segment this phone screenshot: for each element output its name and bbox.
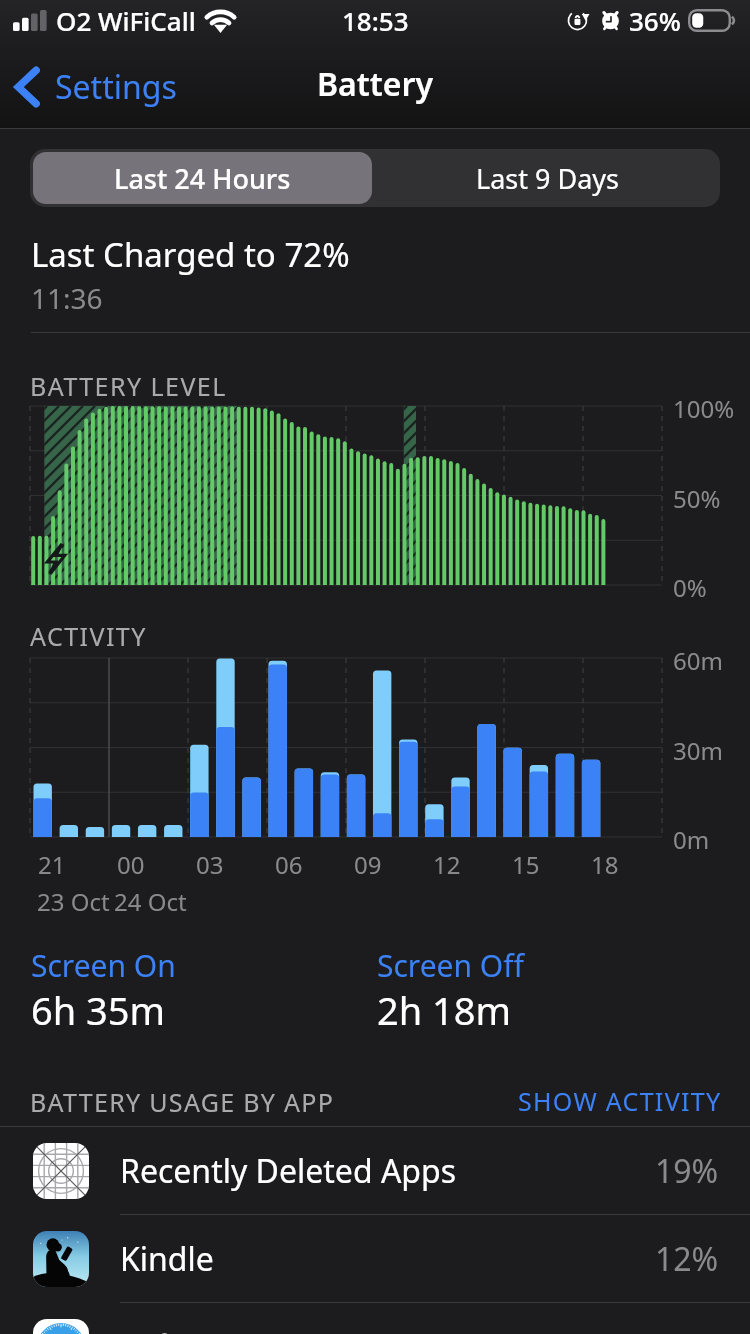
staticText: Safari [120,1325,206,1334]
staticText: 23 Oct [37,885,110,918]
staticText: 50% [673,482,721,515]
staticText: Last 24 Hours [114,160,291,197]
staticText: Screen Off [377,945,524,986]
staticText: 19% [655,1149,719,1193]
button[interactable]: Last 9 Days [375,149,720,207]
staticText: 30m [673,734,723,767]
button[interactable]: Safari [0,1303,750,1334]
button[interactable]: Last 24 Hours [33,152,372,204]
staticText: 0% [673,571,707,604]
staticText: 100% [673,392,735,425]
staticText: 36% [629,3,681,38]
staticText: 60m [673,644,723,677]
staticText: 11:36 [31,279,103,317]
staticText: 6h 35m [31,984,166,1036]
staticText: BATTERY LEVEL [30,369,227,403]
staticText: Settings [55,65,177,109]
staticText: Kindle [120,1237,214,1281]
staticText: 15 [512,848,540,881]
staticText: 12% [655,1237,719,1281]
staticText: 24 Oct [114,885,187,918]
staticText: ACTIVITY [30,619,147,653]
staticText: Recently Deleted Apps [120,1149,457,1193]
staticText: 0m [673,823,710,856]
staticText: Battery [317,62,433,106]
button[interactable]: Kindle [0,1215,750,1302]
staticText: 2h 18m [377,984,512,1036]
staticText: 12 [433,848,461,881]
staticText: 03 [196,848,224,881]
staticText: Last Charged to 72% [31,232,350,277]
staticText: Screen On [31,945,176,986]
staticText: O2 WiFiCall [56,3,196,38]
staticText: Last 9 Days [476,160,620,197]
staticText: 18 [591,848,619,881]
staticText: BATTERY USAGE BY APP [30,1085,335,1119]
staticText: SHOW ACTIVITY [518,1084,722,1118]
staticText: 06 [275,848,303,881]
staticText: 09 [354,848,382,881]
button[interactable]: SHOW ACTIVITY [518,1084,722,1118]
staticText: 18:53 [342,3,409,38]
staticText: 00 [117,848,145,881]
staticText: 21 [38,848,66,881]
button[interactable]: Settings [0,55,191,119]
button[interactable]: Recently Deleted Apps [0,1127,750,1214]
